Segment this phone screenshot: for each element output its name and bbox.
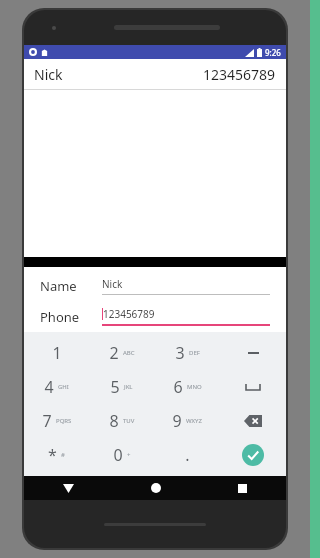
button[interactable]: 7PQRS <box>24 404 89 438</box>
staticText: TUV <box>123 417 135 425</box>
staticText: 9 <box>172 410 182 432</box>
button[interactable]: Nick <box>24 59 286 89</box>
staticText: . <box>185 444 190 466</box>
button[interactable]: 1 <box>24 336 89 370</box>
staticText: 9:26 <box>265 47 281 58</box>
button[interactable]: 9WXYZ <box>154 404 220 438</box>
button[interactable]: *# <box>24 438 89 472</box>
button[interactable]: Done <box>220 438 286 472</box>
staticText: Phone <box>40 308 92 326</box>
staticText: 123456789 <box>103 307 155 321</box>
button[interactable]: 6MNO <box>154 370 220 404</box>
button[interactable]: 4GHI <box>24 370 89 404</box>
button[interactable]: 2ABC <box>89 336 154 370</box>
staticText: Nick <box>102 277 123 291</box>
button[interactable]: 0+ <box>89 438 154 472</box>
staticText: 0 <box>113 444 123 466</box>
staticText: 5 <box>110 376 120 398</box>
staticText: MNO <box>187 383 202 391</box>
staticText: 6 <box>173 376 183 398</box>
staticText: 7 <box>42 410 52 432</box>
staticText: ABC <box>123 349 135 357</box>
button[interactable]: 5JKL <box>89 370 154 404</box>
staticText: 4 <box>44 376 54 398</box>
button[interactable]: Phone <box>40 307 270 326</box>
button[interactable]: Backspace <box>220 404 286 438</box>
button[interactable]: Recents <box>199 476 286 500</box>
staticText: JKL <box>124 383 133 391</box>
button[interactable]: Space <box>220 370 286 404</box>
staticText: Name <box>40 277 92 295</box>
button[interactable]: Dash <box>220 336 286 370</box>
staticText: DEF <box>189 349 200 357</box>
staticText: WXYZ <box>186 417 202 425</box>
button[interactable]: 3DEF <box>154 336 220 370</box>
staticText: 2 <box>109 342 119 364</box>
staticText: # <box>61 451 65 459</box>
staticText: 3 <box>175 342 185 364</box>
button[interactable]: Name <box>40 277 270 295</box>
staticText: Nick <box>34 65 63 84</box>
staticText: * <box>48 444 57 466</box>
button[interactable]: . <box>154 438 220 472</box>
staticText: 123456789 <box>203 65 276 84</box>
button[interactable]: Back <box>24 476 112 500</box>
staticText: 8 <box>109 410 119 432</box>
button[interactable]: 8TUV <box>89 404 154 438</box>
staticText: + <box>127 451 131 459</box>
button[interactable]: Home <box>112 476 199 500</box>
staticText: 1 <box>52 342 62 364</box>
staticText: GHI <box>58 383 69 391</box>
staticText: PQRS <box>56 417 72 425</box>
